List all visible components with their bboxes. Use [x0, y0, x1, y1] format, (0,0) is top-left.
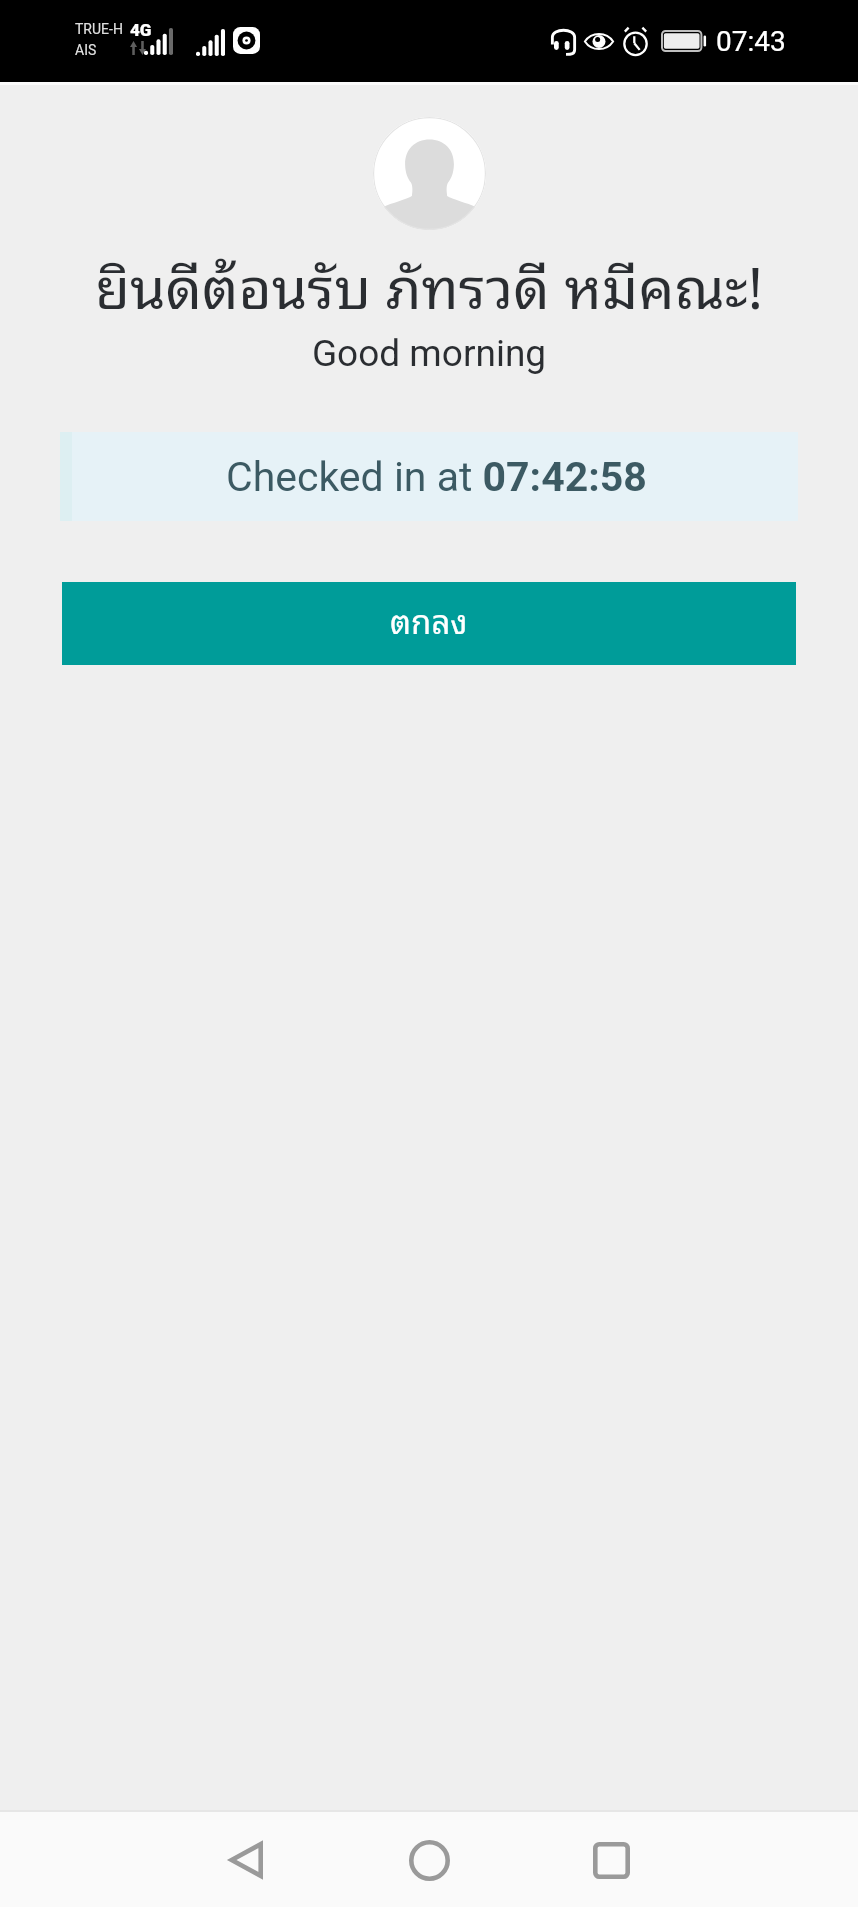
staticText: ตกลง	[390, 593, 468, 646]
staticText: ยินดีต้อนรับ ภัทรวดี หมีคณะ!	[0, 238, 858, 329]
button[interactable]: Home	[383, 1814, 475, 1906]
staticText: Checked in at 07:42:58	[226, 453, 647, 501]
button[interactable]: ตกลง	[62, 582, 796, 665]
staticText: 4G	[130, 20, 152, 40]
button[interactable]: Back	[199, 1814, 291, 1906]
staticText: Good morning	[0, 332, 858, 375]
staticText: TRUE-H	[75, 21, 123, 37]
staticText: AIS	[75, 42, 97, 58]
button[interactable]: Recents	[565, 1814, 657, 1906]
staticText: 07:43	[716, 25, 786, 58]
